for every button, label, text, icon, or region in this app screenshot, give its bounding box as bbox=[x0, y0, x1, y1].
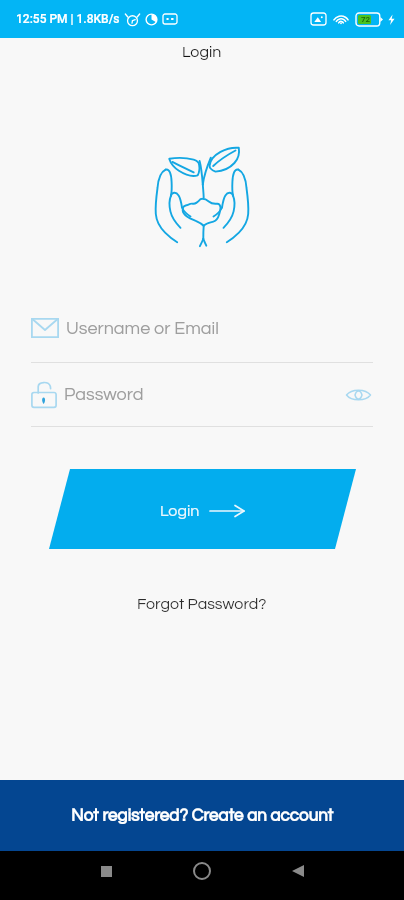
button[interactable]: Forgot Password? bbox=[123, 592, 281, 616]
staticText: 72 bbox=[361, 15, 371, 24]
button[interactable]: Home bbox=[182, 851, 222, 891]
button[interactable]: Show password bbox=[343, 380, 373, 410]
staticText: Username or Email bbox=[66, 319, 219, 338]
button[interactable]: Username or Email bbox=[31, 294, 373, 362]
button[interactable]: Login bbox=[0, 469, 404, 549]
staticText: Not registered? Create an account bbox=[71, 807, 334, 825]
button[interactable]: Recents bbox=[86, 851, 126, 891]
staticText: Login bbox=[182, 44, 222, 60]
button[interactable]: Not registered? Create an account bbox=[0, 780, 404, 851]
staticText: Login bbox=[160, 503, 200, 519]
staticText: Password bbox=[64, 385, 144, 404]
staticText: 12:55 PM | 1.8KB/s bbox=[16, 12, 120, 26]
button[interactable]: Back bbox=[278, 851, 318, 891]
button[interactable]: Password bbox=[31, 363, 373, 426]
staticText: Forgot Password? bbox=[137, 596, 267, 612]
